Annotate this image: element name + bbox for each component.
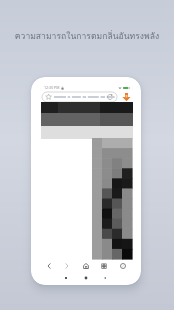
- button[interactable]: Back: [44, 261, 54, 271]
- staticText: 12:30 PM: [44, 85, 60, 90]
- button[interactable]: Forward: [62, 261, 72, 271]
- staticText: ความสามารถในการดมกลิ่นอันทรงพลัง: [0, 29, 174, 43]
- button[interactable]: Address bar: [42, 92, 117, 102]
- button[interactable]: Home: [82, 274, 90, 282]
- button[interactable]: Back: [101, 274, 109, 282]
- button[interactable]: Recents: [62, 274, 70, 282]
- button[interactable]: Home: [81, 261, 91, 271]
- button[interactable]: Explore: [118, 261, 128, 271]
- button[interactable]: Tabs: [99, 261, 109, 271]
- button[interactable]: Download: [122, 92, 131, 102]
